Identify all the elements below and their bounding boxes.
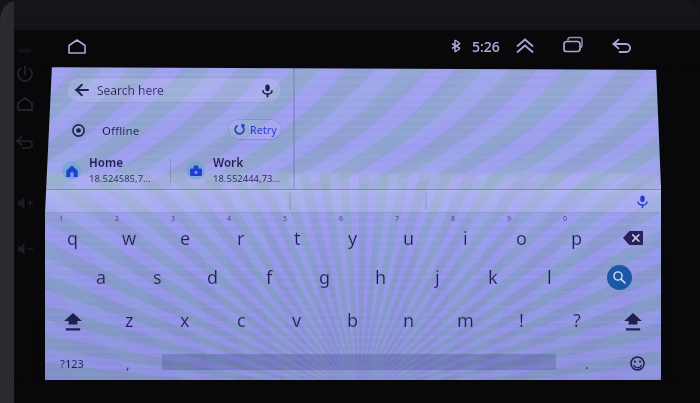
button[interactable]: 8 [437,213,493,257]
button[interactable]: Home [65,36,95,54]
staticText: o [516,226,527,251]
button[interactable]: ? [549,298,605,343]
staticText: x [180,308,190,333]
staticText: ! [519,308,524,333]
button[interactable]: Search here [66,77,282,103]
button[interactable]: j [409,257,465,298]
button[interactable]: Voice input [636,195,649,208]
button[interactable]: Shift [45,298,101,343]
staticText: 18.524585,7… [89,172,151,185]
staticText: 7 [395,214,400,224]
button[interactable]: 5 [269,213,325,257]
button[interactable]: z [101,298,157,343]
staticText: m [457,308,474,333]
staticText: 5:26 [472,37,500,56]
button[interactable]: c [213,298,269,343]
button[interactable]: 0 [549,213,605,257]
button[interactable]: Shift [605,298,661,343]
staticText: 3 [171,214,176,224]
button[interactable]: m [437,298,493,343]
staticText: k [488,265,498,290]
button[interactable]: h [353,257,409,298]
button[interactable]: a [73,257,129,298]
staticText: 2 [115,214,120,224]
button[interactable]: , [99,343,157,380]
staticText: r [237,226,245,251]
staticText: c [237,308,246,333]
button[interactable]: 3 [157,213,213,257]
staticText: 0 [563,214,568,224]
button[interactable]: Backspace [605,213,661,257]
staticText: q [67,226,79,251]
staticText: , [126,354,130,373]
button[interactable]: 7 [381,213,437,257]
staticText: . [585,354,589,373]
staticText: 8 [451,214,456,224]
button[interactable]: d [185,257,241,298]
staticText: ? [573,308,581,333]
staticText: Search here [97,82,164,98]
button[interactable]: Retry [228,119,282,140]
staticText: ?123 [60,356,84,371]
button[interactable]: f [241,257,297,298]
button[interactable]: b [325,298,381,343]
button[interactable]: Search [577,257,661,298]
button[interactable]: v [269,298,325,343]
staticText: a [96,265,107,290]
staticText: 6 [339,214,344,224]
button[interactable]: 1 [45,213,101,257]
staticText: Work [213,155,244,171]
staticText: 9 [507,214,512,224]
staticText: 18.552444,73… [213,172,281,185]
staticText: e [180,226,191,251]
staticText: j [435,265,440,290]
staticText: 4 [227,214,232,224]
button[interactable]: ?123 [45,343,99,380]
staticText: Offline [102,123,140,139]
button[interactable]: . [561,343,613,380]
button[interactable]: g [297,257,353,298]
staticText: b [347,308,359,333]
staticText: Retry [250,123,277,137]
button[interactable]: Expand [514,35,536,57]
button[interactable]: Work [186,153,294,187]
button[interactable]: x [157,298,213,343]
staticText: Home [89,155,124,171]
staticText: v [292,308,302,333]
button[interactable]: Home [62,153,170,187]
button[interactable]: Recents [561,34,585,58]
staticText: 5 [283,214,288,224]
staticText: s [153,265,162,290]
button[interactable]: 4 [213,213,269,257]
button[interactable]: s [129,257,185,298]
staticText: l [547,265,552,290]
staticText: i [463,226,468,251]
staticText: y [348,226,358,251]
button[interactable]: 6 [325,213,381,257]
staticText: t [294,226,301,251]
button[interactable]: 2 [101,213,157,257]
button[interactable]: k [465,257,521,298]
button[interactable]: n [381,298,437,343]
staticText: n [403,308,415,333]
staticText: p [571,226,583,251]
staticText: d [207,265,219,290]
button[interactable]: Emoji [613,343,661,380]
staticText: z [125,308,134,333]
staticText: w [122,226,137,251]
staticText: h [375,265,387,290]
staticText: 1 [59,214,64,224]
button[interactable]: 9 [493,213,549,257]
staticText: f [266,265,273,290]
button[interactable] [157,343,561,380]
staticText: u [403,226,415,251]
button[interactable]: ! [493,298,549,343]
button[interactable]: Bluetooth [448,38,464,54]
button[interactable]: l [521,257,577,298]
staticText: g [319,265,331,290]
button[interactable]: Back [609,34,633,58]
